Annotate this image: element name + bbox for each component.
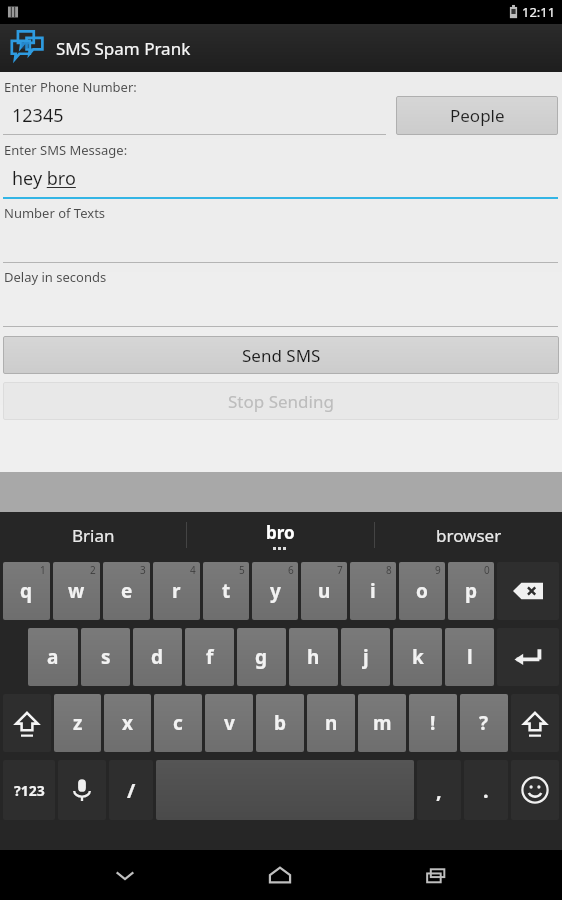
button[interactable]: r: [153, 562, 200, 620]
staticText: n: [325, 710, 338, 736]
staticText: Stop Sending: [228, 390, 334, 413]
button[interactable]: Delete: [497, 562, 559, 620]
staticText: a: [47, 644, 59, 670]
button[interactable]: e: [103, 562, 150, 620]
staticText: 4: [190, 563, 196, 577]
button[interactable]: h: [289, 628, 338, 686]
staticText: d: [151, 644, 164, 670]
staticText: h: [307, 644, 320, 670]
staticText: 2: [90, 563, 96, 577]
button[interactable]: y: [252, 562, 298, 620]
staticText: ?: [479, 710, 489, 736]
staticText: ,: [436, 777, 442, 804]
button[interactable]: u: [301, 562, 347, 620]
button[interactable]: c: [154, 694, 202, 752]
button[interactable]: o: [399, 562, 445, 620]
button[interactable]: .: [464, 760, 508, 820]
button[interactable]: g: [237, 628, 286, 686]
button[interactable]: ?123: [3, 760, 55, 820]
button[interactable]: 12345: [3, 96, 386, 134]
staticText: SMS Spam Prank: [56, 37, 191, 60]
staticText: o: [416, 578, 428, 604]
staticText: 5: [239, 563, 245, 577]
staticText: r: [172, 578, 181, 604]
staticText: i: [370, 578, 376, 604]
button[interactable]: Emoji: [511, 760, 559, 820]
button[interactable]: a: [28, 628, 78, 686]
staticText: 1: [40, 563, 46, 577]
staticText: y: [270, 578, 281, 604]
button[interactable]: p: [448, 562, 494, 620]
button[interactable]: f: [185, 628, 234, 686]
staticText: ?123: [14, 781, 45, 800]
button[interactable]: ?: [460, 694, 508, 752]
button[interactable]: q: [3, 562, 50, 620]
button[interactable]: hey bro: [3, 159, 558, 197]
button[interactable]: Home: [250, 850, 310, 900]
button[interactable]: /: [109, 760, 153, 820]
button[interactable]: People: [396, 96, 558, 135]
staticText: k: [412, 644, 424, 670]
button[interactable]: t: [203, 562, 249, 620]
button[interactable]: Space: [156, 760, 414, 820]
button[interactable]: Recent apps: [406, 850, 466, 900]
button[interactable]: d: [133, 628, 182, 686]
button[interactable]: bro: [187, 512, 374, 558]
button[interactable]: i: [350, 562, 396, 620]
staticText: hey bro: [12, 166, 76, 191]
button[interactable]: b: [256, 694, 304, 752]
staticText: p: [465, 578, 478, 604]
button[interactable]: w: [53, 562, 100, 620]
staticText: 12345: [12, 103, 64, 128]
button[interactable]: Shift: [3, 694, 51, 752]
staticText: browser: [436, 524, 502, 547]
staticText: f: [206, 644, 214, 670]
staticText: 12:11: [522, 3, 556, 21]
staticText: Delay in seconds: [4, 268, 107, 286]
button[interactable]: k: [393, 628, 442, 686]
staticText: q: [20, 578, 33, 604]
button[interactable]: Shift: [511, 694, 559, 752]
button[interactable]: ,: [417, 760, 461, 820]
staticText: s: [101, 644, 111, 670]
button[interactable]: v: [205, 694, 253, 752]
staticText: 7: [337, 563, 343, 577]
button[interactable]: Enter: [497, 628, 559, 686]
staticText: !: [430, 710, 436, 736]
button[interactable]: Send SMS: [3, 336, 559, 374]
button[interactable]: Stop Sending: [3, 382, 559, 420]
staticText: .: [483, 777, 489, 804]
button[interactable]: z: [54, 694, 101, 752]
staticText: v: [224, 710, 235, 736]
button[interactable]: !: [409, 694, 457, 752]
staticText: 0: [484, 563, 490, 577]
button[interactable]: Hide keyboard: [95, 850, 155, 900]
button[interactable]: j: [341, 628, 390, 686]
staticText: b: [274, 710, 287, 736]
staticText: Brian: [72, 524, 115, 547]
button[interactable]: browser: [375, 512, 562, 558]
button[interactable]: x: [104, 694, 151, 752]
staticText: m: [373, 710, 392, 736]
staticText: bro: [266, 521, 295, 544]
staticText: x: [122, 710, 133, 736]
button[interactable]: l: [445, 628, 494, 686]
button[interactable]: s: [81, 628, 130, 686]
staticText: 3: [140, 563, 146, 577]
staticText: 6: [288, 563, 294, 577]
staticText: Number of Texts: [4, 204, 106, 222]
staticText: j: [363, 644, 369, 670]
staticText: u: [318, 578, 331, 604]
button[interactable]: m: [358, 694, 406, 752]
staticText: Enter SMS Message:: [4, 141, 128, 159]
button[interactable]: n: [307, 694, 355, 752]
staticText: w: [68, 578, 85, 604]
button[interactable]: Brian: [0, 512, 186, 558]
staticText: g: [255, 644, 268, 670]
staticText: e: [121, 578, 133, 604]
staticText: c: [173, 710, 183, 736]
staticText: /: [127, 777, 136, 804]
button[interactable]: Voice input: [58, 760, 106, 820]
